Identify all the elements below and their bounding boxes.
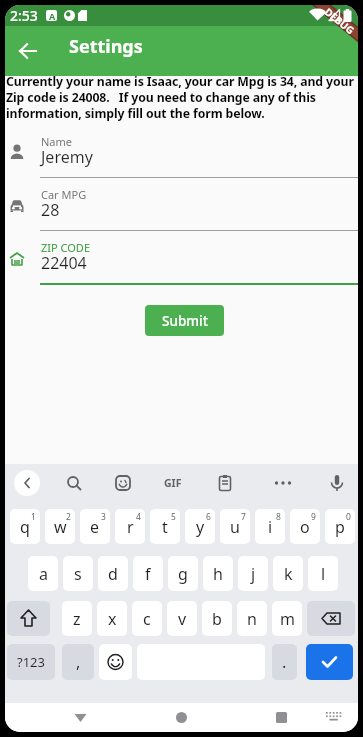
button[interactable]: z — [62, 601, 92, 636]
staticText: 5 — [171, 511, 176, 523]
button[interactable]: t — [150, 509, 180, 544]
button[interactable] — [74, 711, 87, 724]
staticText: c — [143, 608, 151, 630]
staticText: 9 — [311, 511, 316, 523]
button[interactable] — [325, 709, 343, 725]
button[interactable]: a — [28, 556, 58, 591]
button[interactable] — [14, 470, 40, 496]
staticText: j — [251, 563, 256, 585]
staticText: 3 — [101, 511, 106, 523]
staticText: 2:53 — [10, 6, 38, 25]
staticText: d — [108, 563, 118, 585]
button[interactable] — [307, 601, 355, 636]
staticText: Name — [41, 134, 73, 149]
staticText: Submit — [162, 312, 208, 330]
staticText: GIF — [164, 476, 182, 490]
staticText: Car MPG — [41, 187, 87, 202]
staticText: Settings — [69, 34, 143, 59]
staticText: 6 — [206, 511, 211, 523]
staticText: Zip code is 24008. If you need to change… — [6, 89, 316, 106]
staticText: , — [76, 651, 81, 673]
button[interactable]: f — [133, 556, 163, 591]
button[interactable]: , — [62, 644, 94, 680]
button[interactable]: y — [185, 509, 215, 544]
button[interactable]: e — [80, 509, 110, 544]
button[interactable] — [16, 39, 40, 63]
staticText: t — [162, 516, 168, 538]
staticText: 0 — [346, 511, 351, 523]
button[interactable]: q — [10, 509, 40, 544]
staticText: y — [196, 516, 205, 538]
staticText: 8 — [276, 511, 281, 523]
staticText: v — [178, 608, 187, 630]
staticText: z — [73, 608, 81, 630]
button[interactable]: ?123 — [7, 644, 55, 680]
staticText: ?123 — [17, 653, 45, 671]
staticText: 7 — [241, 511, 246, 523]
staticText: s — [74, 563, 82, 585]
button[interactable] — [7, 601, 50, 636]
staticText: 28 — [41, 199, 60, 221]
staticText: r — [127, 516, 134, 538]
button[interactable]: d — [98, 556, 128, 591]
button[interactable] — [175, 711, 188, 724]
staticText: k — [284, 563, 293, 585]
button[interactable] — [213, 471, 237, 495]
staticText: f — [145, 563, 151, 585]
button[interactable]: . — [272, 644, 297, 680]
staticText: g — [178, 563, 188, 585]
button[interactable] — [99, 644, 132, 680]
staticText: ZIP CODE — [41, 240, 91, 255]
button[interactable]: m — [272, 601, 302, 636]
staticText: 22404 — [41, 252, 87, 274]
button[interactable]: s — [63, 556, 93, 591]
staticText: a — [39, 563, 48, 585]
button[interactable]: w — [45, 509, 75, 544]
button[interactable]: u — [220, 509, 250, 544]
button[interactable]: r — [115, 509, 145, 544]
button[interactable] — [271, 471, 295, 495]
button[interactable]: o — [290, 509, 320, 544]
button[interactable] — [325, 471, 349, 495]
staticText: 2 — [66, 511, 71, 523]
staticText: e — [90, 516, 100, 538]
staticText: w — [54, 516, 67, 538]
button[interactable] — [275, 711, 288, 724]
staticText: x — [108, 608, 117, 630]
button[interactable]: l — [308, 556, 338, 591]
staticText: l — [321, 563, 326, 585]
button[interactable] — [62, 471, 86, 495]
staticText: h — [213, 563, 223, 585]
staticText: q — [20, 516, 30, 538]
staticText: information, simply fill out the form be… — [6, 105, 265, 122]
staticText: o — [300, 516, 310, 538]
button[interactable] — [306, 644, 353, 680]
staticText: Jeremy — [41, 146, 93, 168]
button[interactable]: n — [237, 601, 267, 636]
button[interactable]: j — [238, 556, 268, 591]
button[interactable]: g — [168, 556, 198, 591]
staticText: 4 — [136, 511, 141, 523]
staticText: u — [230, 516, 240, 538]
staticText: 1 — [31, 511, 36, 523]
button[interactable]: x — [97, 601, 127, 636]
staticText: n — [247, 608, 257, 630]
staticText: m — [280, 608, 295, 630]
button[interactable]: i — [255, 509, 285, 544]
staticText: b — [212, 608, 222, 630]
button[interactable]: h — [203, 556, 233, 591]
staticText: DEBUG — [323, 5, 358, 36]
staticText: p — [335, 516, 345, 538]
staticText: . — [282, 651, 287, 673]
button[interactable]: v — [167, 601, 197, 636]
button[interactable]: b — [202, 601, 232, 636]
staticText: Currently your name is Isaac, your car M… — [6, 73, 354, 90]
staticText: A — [49, 10, 56, 22]
button[interactable]: k — [273, 556, 303, 591]
button[interactable]: p — [325, 509, 355, 544]
button[interactable]: c — [132, 601, 162, 636]
button[interactable] — [111, 471, 135, 495]
button[interactable]: Submit — [145, 305, 224, 336]
staticText: i — [268, 516, 273, 538]
